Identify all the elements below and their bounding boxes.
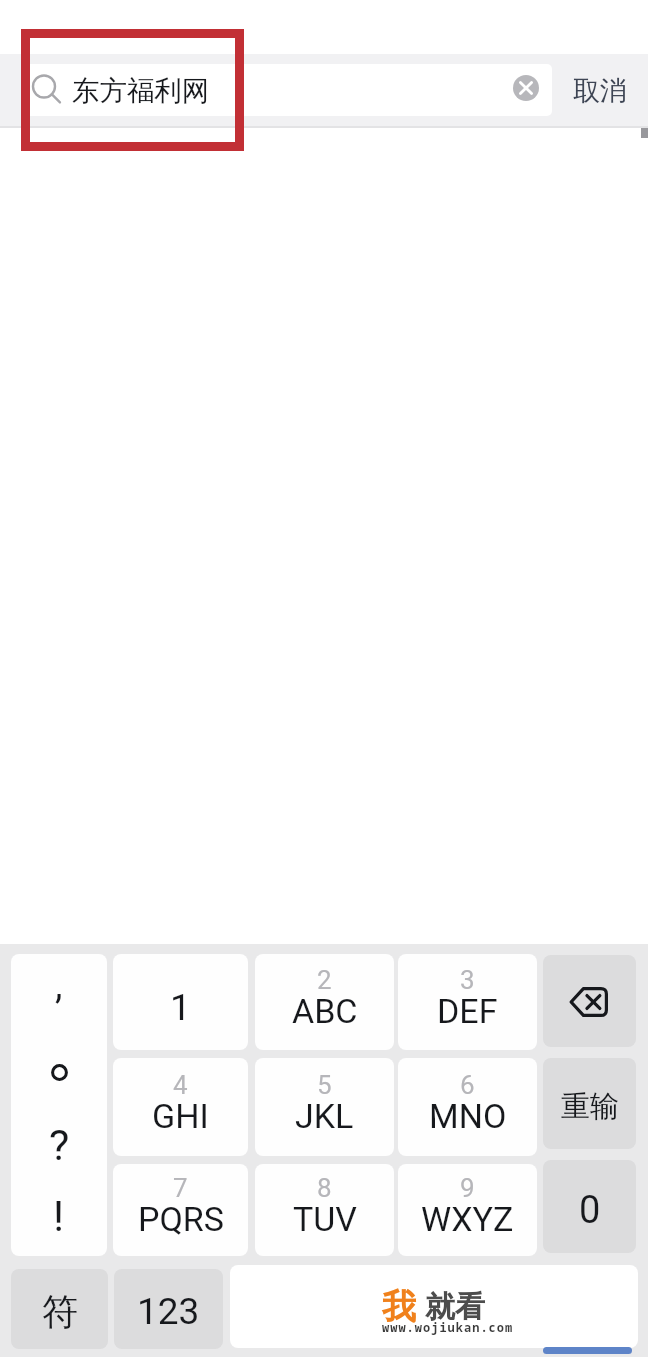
button[interactable]: 8 bbox=[255, 1164, 394, 1256]
staticText: ! bbox=[53, 1191, 65, 1241]
staticText: ABC bbox=[292, 991, 358, 1031]
staticText: 2 bbox=[317, 965, 332, 995]
staticText: 1 bbox=[170, 986, 191, 1029]
button[interactable]: 9 bbox=[398, 1164, 537, 1256]
button[interactable]: 1 bbox=[113, 954, 248, 1050]
staticText: TUV bbox=[293, 1199, 357, 1239]
staticText: 符 bbox=[42, 1289, 78, 1334]
staticText: GHI bbox=[152, 1096, 209, 1136]
staticText: WXYZ bbox=[421, 1199, 514, 1239]
staticText: 123 bbox=[137, 1290, 200, 1333]
staticText: PQRS bbox=[138, 1199, 224, 1239]
button[interactable]: 取消 bbox=[560, 60, 640, 120]
staticText: 就看 bbox=[425, 1288, 485, 1326]
staticText: DEF bbox=[437, 991, 498, 1031]
staticText: , bbox=[55, 963, 63, 1008]
button[interactable]: 2 bbox=[255, 954, 394, 1050]
staticText: 3 bbox=[460, 965, 475, 995]
staticText: ? bbox=[49, 1120, 70, 1170]
staticText: 8 bbox=[317, 1173, 332, 1203]
button[interactable]: 重输 bbox=[543, 1058, 636, 1149]
button[interactable]: 5 bbox=[255, 1058, 394, 1156]
staticText: 7 bbox=[173, 1173, 188, 1203]
staticText: 我 bbox=[382, 1285, 416, 1328]
button[interactable]: 3 bbox=[398, 954, 537, 1050]
staticText: www.wojiukan.com bbox=[382, 1319, 514, 1335]
staticText: 5 bbox=[317, 1070, 332, 1100]
button[interactable]: 4 bbox=[113, 1058, 248, 1156]
staticText: 东方福利网 bbox=[72, 74, 210, 109]
button[interactable]: Clear text bbox=[508, 72, 544, 108]
button[interactable]: 符 bbox=[11, 1269, 108, 1349]
button[interactable]: 0 bbox=[543, 1160, 636, 1253]
button[interactable]: 6 bbox=[398, 1058, 537, 1156]
button[interactable]: 123 bbox=[114, 1269, 223, 1349]
staticText: 重输 bbox=[561, 1088, 619, 1125]
staticText: MNO bbox=[429, 1096, 507, 1136]
staticText: JKL bbox=[295, 1096, 354, 1136]
staticText: 取消 bbox=[573, 74, 627, 108]
button[interactable]: Space bbox=[230, 1265, 638, 1348]
staticText: 0 bbox=[579, 1188, 601, 1233]
staticText: 4 bbox=[173, 1070, 188, 1100]
button[interactable]: Backspace bbox=[543, 955, 636, 1047]
button[interactable]: 东方福利网 bbox=[24, 64, 552, 116]
staticText: 6 bbox=[460, 1070, 475, 1100]
staticText: 9 bbox=[460, 1173, 475, 1203]
button[interactable]: Punctuation bbox=[11, 954, 107, 1256]
button[interactable]: 7 bbox=[113, 1164, 248, 1256]
